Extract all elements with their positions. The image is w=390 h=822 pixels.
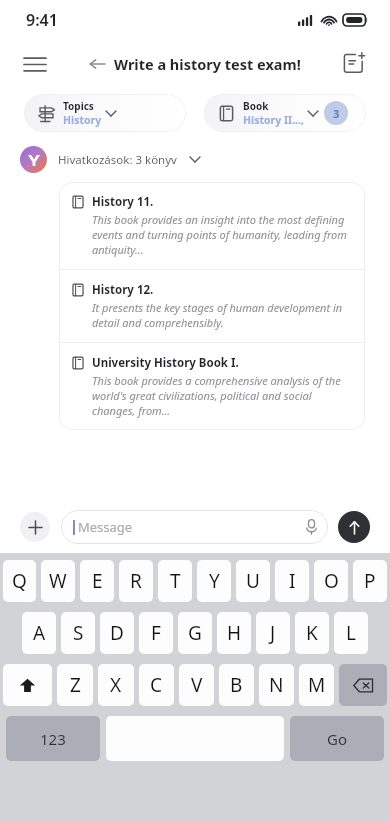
button[interactable]: Go [290, 716, 384, 761]
staticText: B [230, 672, 243, 698]
button[interactable]: Topics [24, 94, 186, 132]
staticText: Hivatkozások: 3 könyv [58, 152, 177, 168]
button[interactable]: University History Book I. [59, 343, 365, 430]
button[interactable]: L [334, 612, 368, 654]
staticText: I [289, 568, 296, 594]
staticText: This book provides an insight into the m… [92, 212, 353, 257]
staticText: S [73, 620, 84, 646]
button[interactable]: F [139, 612, 173, 654]
staticText: V [191, 672, 203, 698]
button[interactable]: Back [89, 54, 301, 74]
staticText: Go [327, 729, 347, 749]
staticText: R [130, 568, 142, 594]
staticText: 9:41 [26, 9, 58, 31]
button[interactable]: 123 [6, 716, 100, 761]
other: Back [89, 56, 105, 72]
staticText: F [151, 620, 161, 646]
button[interactable]: J [256, 612, 290, 654]
staticText: Book [243, 99, 269, 113]
staticText: W [49, 568, 67, 594]
button[interactable]: Hivatkozások: 3 könyv [20, 146, 390, 173]
staticText: History 12. [92, 282, 154, 298]
other: Voice input [305, 519, 318, 535]
button[interactable]: K [295, 612, 329, 654]
button[interactable]: Shift [3, 664, 52, 706]
button[interactable]: Q [3, 560, 36, 602]
staticText: History 11. [92, 194, 154, 210]
button[interactable]: E [80, 560, 114, 602]
staticText: C [150, 672, 163, 698]
button[interactable]: A [22, 612, 56, 654]
button[interactable]: U [236, 560, 270, 602]
staticText: P [364, 568, 376, 594]
button[interactable]: Z [57, 664, 93, 706]
button[interactable]: History 11. [59, 182, 365, 269]
button[interactable]: I [275, 560, 309, 602]
staticText: It presents the key stages of human deve… [92, 300, 353, 330]
staticText: O [324, 568, 339, 594]
button[interactable]: S [61, 612, 95, 654]
staticText: L [346, 620, 356, 646]
staticText: 123 [40, 729, 66, 749]
button[interactable]: Send [338, 511, 370, 543]
button[interactable]: Y [197, 560, 231, 602]
button[interactable]: H [217, 612, 251, 654]
button[interactable]: P [353, 560, 387, 602]
button[interactable]: Add attachment [20, 512, 50, 542]
staticText: T [170, 568, 181, 594]
staticText: Y [209, 568, 220, 594]
staticText: M [308, 672, 326, 698]
button[interactable]: G [178, 612, 212, 654]
button[interactable]: History 12. [59, 270, 365, 342]
button[interactable]: T [158, 560, 192, 602]
staticText: History [63, 113, 102, 127]
staticText: Message [78, 518, 305, 536]
button[interactable]: M [299, 664, 334, 706]
staticText: Q [12, 568, 27, 594]
button[interactable]: Book [204, 94, 366, 132]
button[interactable]: Menu [14, 43, 56, 85]
button[interactable]: D [100, 612, 134, 654]
button[interactable]: B [219, 664, 254, 706]
button[interactable]: W [41, 560, 75, 602]
button[interactable]: X [98, 664, 134, 706]
staticText: This book provides a comprehensive analy… [92, 373, 353, 418]
button[interactable]: N [259, 664, 294, 706]
button[interactable]: Message [61, 510, 328, 544]
staticText: U [246, 568, 260, 594]
staticText: 3 [333, 106, 340, 121]
staticText: History II..., [243, 113, 304, 127]
staticText: E [92, 568, 103, 594]
staticText: X [110, 672, 122, 698]
button[interactable]: V [179, 664, 214, 706]
button[interactable]: New chat [334, 44, 374, 84]
staticText: G [188, 620, 202, 646]
staticText: K [306, 620, 318, 646]
staticText: Write a history test exam! [114, 54, 301, 74]
staticText: University History Book I. [92, 355, 239, 371]
staticText: H [227, 620, 242, 646]
staticText: J [270, 620, 276, 646]
staticText: D [110, 620, 124, 646]
staticText: A [33, 620, 46, 646]
staticText: Z [70, 672, 81, 698]
button[interactable]: Backspace [339, 664, 387, 706]
staticText: Topics [63, 99, 94, 113]
button[interactable]: C [139, 664, 174, 706]
button[interactable]: O [314, 560, 348, 602]
staticText: N [269, 672, 284, 698]
button[interactable]: R [119, 560, 153, 602]
